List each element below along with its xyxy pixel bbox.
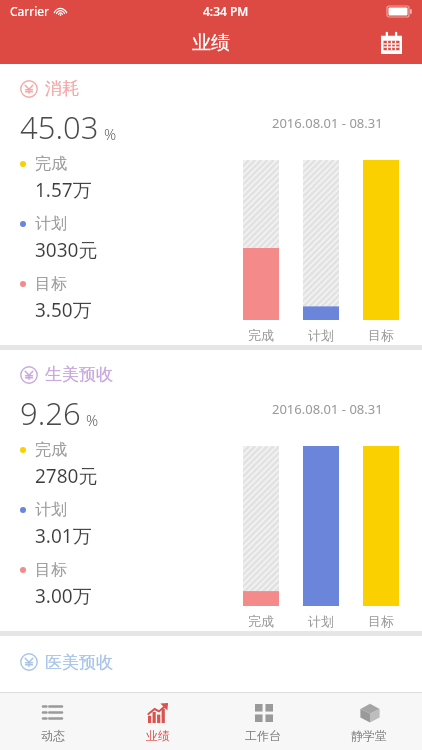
- staticText: 医美预收: [45, 652, 113, 673]
- staticText: 完成: [248, 327, 274, 343]
- staticText: 目标: [35, 274, 67, 294]
- staticText: 动态: [41, 728, 65, 743]
- button[interactable]: Calendar: [374, 26, 408, 60]
- button[interactable]: 工作台: [210, 693, 316, 750]
- staticText: 工作台: [245, 728, 281, 743]
- staticText: 目标: [35, 560, 67, 580]
- button[interactable]: 动态: [0, 693, 105, 750]
- staticText: 目标: [368, 327, 394, 343]
- staticText: 完成: [35, 154, 67, 174]
- staticText: 2016.08.01 - 08.31: [272, 400, 383, 418]
- staticText: 9.26: [20, 392, 81, 434]
- staticText: 3.00万: [35, 583, 92, 609]
- button[interactable]: 生美预收: [0, 350, 422, 631]
- button[interactable]: 业绩: [105, 693, 210, 750]
- staticText: 2016.08.01 - 08.31: [272, 114, 383, 132]
- staticText: 静学堂: [351, 728, 387, 743]
- staticText: 3.01万: [35, 523, 92, 549]
- staticText: %: [86, 410, 99, 430]
- staticText: %: [104, 124, 117, 144]
- staticText: 3.50万: [35, 297, 92, 323]
- staticText: Carrier: [10, 3, 50, 19]
- staticText: 完成: [248, 613, 274, 629]
- staticText: 计划: [308, 327, 334, 343]
- staticText: 业绩: [192, 31, 230, 55]
- staticText: 计划: [35, 500, 67, 520]
- staticText: 完成: [35, 440, 67, 460]
- staticText: 4:34 PM: [203, 3, 249, 19]
- staticText: 消耗: [45, 78, 79, 99]
- staticText: 2780元: [35, 463, 98, 489]
- staticText: 生美预收: [45, 364, 113, 385]
- button[interactable]: 消耗: [0, 64, 422, 345]
- staticText: 目标: [368, 613, 394, 629]
- staticText: 计划: [308, 613, 334, 629]
- staticText: 业绩: [146, 728, 170, 743]
- staticText: 计划: [35, 214, 67, 234]
- staticText: 3030元: [35, 237, 98, 263]
- staticText: 1.57万: [35, 177, 92, 203]
- button[interactable]: 静学堂: [316, 693, 422, 750]
- staticText: 45.03: [20, 106, 99, 148]
